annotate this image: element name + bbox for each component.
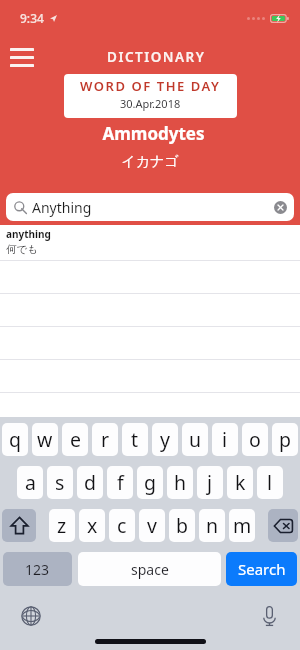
button[interactable]: i bbox=[212, 423, 238, 456]
staticText: v bbox=[147, 512, 157, 539]
button[interactable]: g bbox=[137, 466, 163, 499]
staticText: j bbox=[207, 469, 213, 496]
button[interactable]: o bbox=[242, 423, 268, 456]
button[interactable]: Anything bbox=[6, 193, 294, 221]
button[interactable]: a bbox=[17, 466, 43, 499]
button[interactable]: e bbox=[62, 423, 88, 456]
button[interactable]: m bbox=[229, 509, 255, 542]
staticText: y bbox=[160, 426, 170, 453]
button[interactable]: WORD OF THE DAY bbox=[64, 74, 237, 118]
staticText: r bbox=[101, 426, 110, 453]
button[interactable]: n bbox=[199, 509, 225, 542]
button[interactable]: z bbox=[49, 509, 75, 542]
staticText: u bbox=[189, 426, 202, 453]
staticText: Anything bbox=[32, 198, 92, 217]
staticText: 123 bbox=[25, 560, 50, 579]
button[interactable]: Search bbox=[226, 552, 297, 586]
button[interactable]: Menu bbox=[8, 43, 36, 71]
staticText: space bbox=[131, 560, 169, 579]
staticText: h bbox=[174, 469, 187, 496]
button[interactable]: j bbox=[197, 466, 223, 499]
button[interactable]: y bbox=[152, 423, 178, 456]
staticText: o bbox=[249, 426, 261, 453]
staticText: WORD OF THE DAY bbox=[80, 77, 221, 95]
staticText: a bbox=[25, 469, 36, 496]
staticText: Search bbox=[238, 559, 286, 579]
button[interactable]: anything bbox=[0, 225, 300, 260]
button[interactable]: r bbox=[92, 423, 118, 456]
button[interactable]: x bbox=[79, 509, 105, 542]
staticText: s bbox=[55, 469, 65, 496]
staticText: i bbox=[222, 426, 228, 453]
button[interactable]: q bbox=[2, 423, 28, 456]
button[interactable]: space bbox=[78, 552, 221, 586]
button[interactable]: Dictate bbox=[258, 605, 280, 627]
button[interactable]: d bbox=[77, 466, 103, 499]
button[interactable]: h bbox=[167, 466, 193, 499]
staticText: g bbox=[144, 469, 156, 496]
button[interactable]: l bbox=[257, 466, 283, 499]
staticText: p bbox=[279, 426, 291, 453]
button[interactable]: f bbox=[107, 466, 133, 499]
staticText: c bbox=[117, 512, 127, 539]
button[interactable]: p bbox=[272, 423, 298, 456]
staticText: e bbox=[70, 426, 81, 453]
button[interactable]: 123 bbox=[3, 552, 72, 586]
staticText: b bbox=[176, 512, 188, 539]
staticText: DICTIONARY bbox=[107, 48, 206, 66]
staticText: n bbox=[206, 512, 219, 539]
button[interactable]: t bbox=[122, 423, 148, 456]
staticText: q bbox=[9, 426, 21, 453]
staticText: k bbox=[235, 469, 246, 496]
button[interactable]: Backspace bbox=[268, 509, 298, 542]
staticText: m bbox=[233, 512, 252, 539]
staticText: 何でも bbox=[6, 243, 38, 256]
button[interactable]: w bbox=[32, 423, 58, 456]
staticText: z bbox=[57, 512, 67, 539]
staticText: 30.Apr.2018 bbox=[120, 96, 181, 111]
button[interactable]: v bbox=[139, 509, 165, 542]
button[interactable]: Shift bbox=[2, 509, 36, 542]
staticText: イカナゴ bbox=[0, 153, 300, 171]
button[interactable]: s bbox=[47, 466, 73, 499]
button[interactable]: c bbox=[109, 509, 135, 542]
button[interactable]: u bbox=[182, 423, 208, 456]
staticText: t bbox=[131, 426, 139, 453]
button[interactable]: b bbox=[169, 509, 195, 542]
button[interactable]: Clear text bbox=[274, 201, 287, 214]
staticText: Ammodytes bbox=[7, 122, 300, 145]
staticText: l bbox=[267, 469, 273, 496]
staticText: w bbox=[37, 426, 53, 453]
staticText: f bbox=[117, 469, 124, 496]
staticText: 9:34 bbox=[20, 10, 44, 26]
staticText: d bbox=[84, 469, 96, 496]
button[interactable]: k bbox=[227, 466, 253, 499]
button[interactable]: Change keyboard bbox=[20, 605, 42, 627]
staticText: x bbox=[87, 512, 98, 539]
staticText: anything bbox=[6, 227, 51, 241]
